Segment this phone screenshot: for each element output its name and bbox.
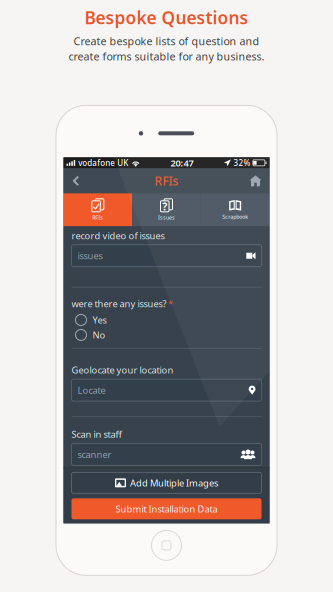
staticText: Issues xyxy=(158,214,175,221)
button[interactable]: ? xyxy=(132,193,201,226)
staticText: Scrapbook xyxy=(222,213,248,220)
staticText: Submit Installation Data xyxy=(115,503,217,515)
staticText: Add Multiple Images xyxy=(130,477,218,489)
staticText: RFIs xyxy=(154,173,178,189)
staticText: 20:47 xyxy=(171,157,194,169)
staticText: * xyxy=(168,297,173,310)
staticText: Scan in staff xyxy=(71,428,121,440)
button[interactable]: Back xyxy=(63,170,88,192)
staticText: vodafone UK xyxy=(78,157,128,168)
staticText: Locate xyxy=(77,384,105,396)
staticText: Geolocate your location xyxy=(71,364,173,376)
staticText: Bespoke Questions xyxy=(84,6,248,29)
button[interactable]: No xyxy=(71,329,261,341)
staticText: Create bespoke lists of question and xyxy=(73,34,259,48)
staticText: create forms suitable for any business. xyxy=(68,49,264,63)
staticText: were there any issues? xyxy=(71,297,166,310)
button[interactable]: Add Multiple Images xyxy=(71,472,261,493)
staticText: scanner xyxy=(77,448,111,460)
staticText: RFIs xyxy=(92,214,103,221)
staticText: record video of issues xyxy=(71,229,164,242)
staticText: issues xyxy=(77,249,102,262)
button[interactable]: RFIs xyxy=(63,193,132,226)
button[interactable]: Submit Installation Data xyxy=(71,498,261,519)
staticText: No xyxy=(92,329,105,341)
staticText: ? xyxy=(162,199,167,213)
button[interactable]: Scrapbook xyxy=(201,193,269,226)
staticText: Yes xyxy=(92,314,106,326)
button[interactable]: Home xyxy=(241,170,269,192)
staticText: 32% xyxy=(233,157,250,168)
button[interactable]: Yes xyxy=(71,314,261,326)
